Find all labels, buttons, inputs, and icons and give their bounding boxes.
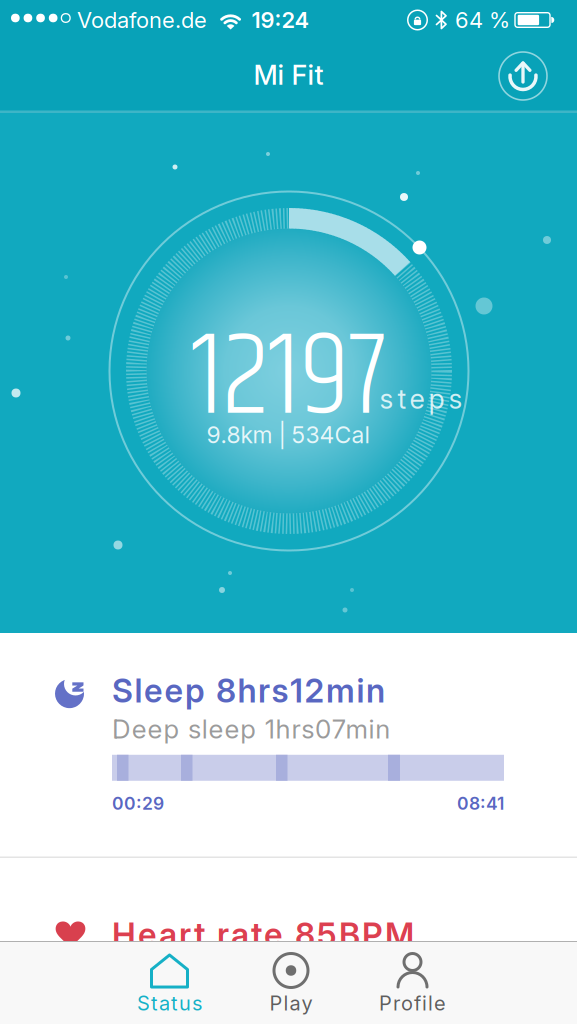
- button[interactable]: Heart rate 85BPM: [0, 858, 577, 1024]
- button[interactable]: Sleep 8hrs12min: [0, 633, 577, 858]
- staticText: 64 %: [455, 7, 510, 33]
- staticText: Heart rate 85BPM: [112, 915, 414, 954]
- staticText: 00:29: [112, 793, 164, 814]
- staticText: Sleep 8hrs12min: [112, 671, 385, 710]
- button[interactable]: Share: [499, 52, 547, 100]
- staticText: steps: [379, 383, 462, 415]
- staticText: 08:41: [457, 793, 504, 814]
- button[interactable]: Profile: [352, 941, 473, 1024]
- staticText: Play: [269, 991, 312, 1015]
- staticText: Profile: [379, 991, 446, 1015]
- staticText: 9.8km | 534Cal: [206, 421, 369, 449]
- button[interactable]: Status: [109, 941, 230, 1024]
- staticText: 19:24: [251, 7, 309, 33]
- staticText: Deep sleep 1hrs07min: [112, 713, 390, 745]
- staticText: Status: [137, 991, 202, 1015]
- staticText: Mi Fit: [253, 59, 323, 91]
- button[interactable]: Play: [230, 941, 352, 1024]
- staticText: 12197: [191, 289, 386, 469]
- staticText: Vodafone.de: [77, 7, 207, 33]
